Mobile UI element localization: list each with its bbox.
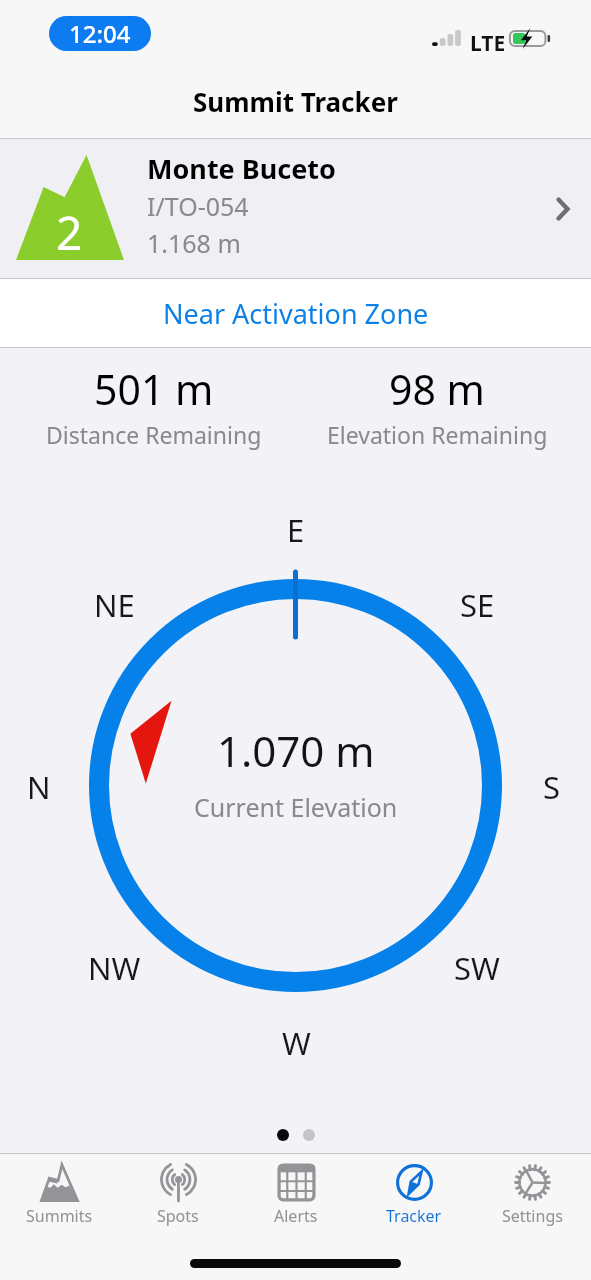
staticText: Monte Buceto xyxy=(147,150,336,187)
staticText: 1.168 m xyxy=(147,226,241,260)
button[interactable]: Page 2 xyxy=(303,1129,315,1141)
staticText: W xyxy=(282,1022,311,1062)
staticText: Distance Remaining xyxy=(46,419,262,450)
staticText: E xyxy=(287,509,305,549)
button[interactable]: Near Activation Zone xyxy=(0,279,591,348)
staticText: SE xyxy=(460,584,495,624)
staticText: LTE xyxy=(470,29,506,58)
staticText: N xyxy=(27,766,51,806)
staticText: Alerts xyxy=(274,1205,318,1227)
button[interactable]: Summits xyxy=(0,1154,119,1242)
staticText: SW xyxy=(454,947,500,987)
staticText: 1.070 m xyxy=(217,722,375,779)
staticText: Elevation Remaining xyxy=(327,419,548,450)
button[interactable]: Spots xyxy=(119,1154,237,1242)
button[interactable]: Page 1 xyxy=(277,1129,289,1141)
staticText: Spots xyxy=(157,1205,199,1227)
staticText: 2 xyxy=(56,201,83,264)
other: Open summit details xyxy=(556,197,570,221)
staticText: Summit Tracker xyxy=(193,84,398,119)
staticText: Settings xyxy=(502,1205,563,1227)
button[interactable]: Monte Buceto, I/TO-054, 1.168 m xyxy=(0,139,591,279)
staticText: Tracker xyxy=(386,1205,442,1227)
button[interactable]: Tracker xyxy=(355,1154,473,1242)
staticText: NW xyxy=(88,947,141,987)
staticText: S xyxy=(543,766,561,806)
staticText: Near Activation Zone xyxy=(163,295,429,332)
staticText: I/TO-054 xyxy=(147,189,249,223)
staticText: Current Elevation xyxy=(194,790,398,824)
staticText: 501 m xyxy=(94,361,214,417)
staticText: 98 m xyxy=(389,361,485,417)
staticText: NE xyxy=(94,584,135,624)
staticText: Summits xyxy=(26,1205,93,1227)
button[interactable]: Settings xyxy=(473,1154,591,1242)
staticText: 12:04 xyxy=(69,17,131,50)
button[interactable]: Alerts xyxy=(237,1154,355,1242)
